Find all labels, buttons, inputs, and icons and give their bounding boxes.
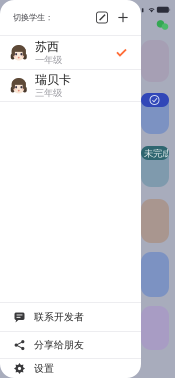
staticText: 苏西 bbox=[35, 39, 59, 54]
button[interactable]: 分享给朋友 bbox=[0, 332, 141, 358]
staticText: 切换学生： bbox=[13, 12, 53, 23]
button[interactable]: 瑞贝卡 bbox=[0, 70, 141, 101]
staticText: 设置 bbox=[34, 362, 54, 375]
staticText: 未完成 bbox=[144, 148, 171, 159]
staticText: 联系开发者 bbox=[34, 311, 84, 323]
staticText: 瑞贝卡 bbox=[35, 72, 71, 87]
staticText: 分享给朋友 bbox=[34, 339, 84, 351]
button[interactable]: Edit students bbox=[94, 5, 110, 29]
button[interactable]: 联系开发者 bbox=[0, 303, 141, 331]
button[interactable]: 设置 bbox=[0, 359, 141, 378]
staticText: 三年级 bbox=[35, 87, 62, 99]
button[interactable]: 苏西 bbox=[0, 36, 141, 69]
button[interactable]: Add student bbox=[115, 5, 131, 29]
staticText: 一年级 bbox=[35, 54, 62, 66]
